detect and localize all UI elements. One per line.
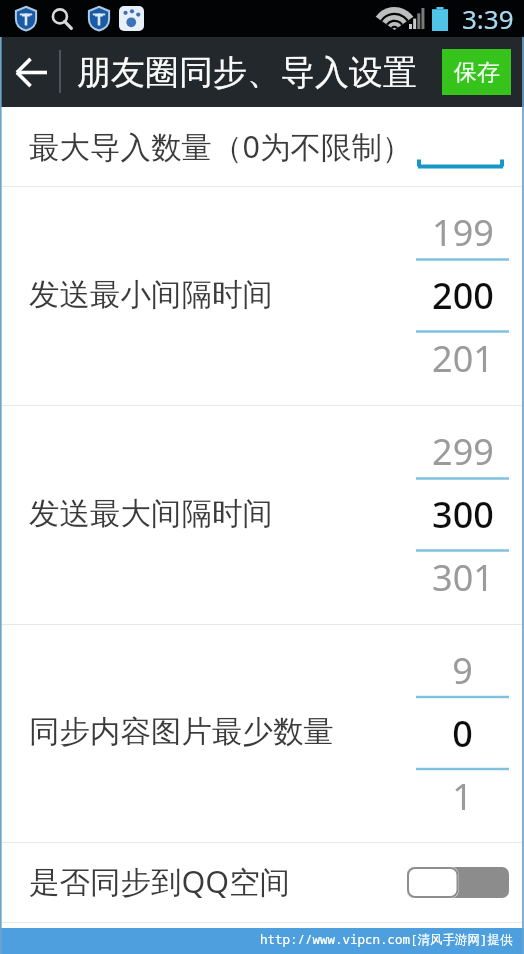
button[interactable]: 最大导入数量（0为不限制） — [0, 107, 524, 186]
button[interactable]: Back — [0, 37, 59, 107]
staticText: 201 — [432, 334, 494, 383]
button[interactable]: Max import count input — [417, 143, 504, 169]
staticText: http://www.vipcn.com[清风手游网]提供 — [260, 931, 513, 948]
button[interactable]: 保存 — [442, 49, 511, 95]
button[interactable]: 发送最大间隔时间 — [0, 405, 524, 624]
staticText: 299 — [432, 427, 494, 476]
staticText: 发送最小间隔时间 — [29, 276, 273, 314]
staticText: 发送最大间隔时间 — [29, 495, 273, 533]
staticText: 保存 — [454, 58, 500, 87]
staticText: 1 — [452, 772, 473, 821]
staticText: 同步内容图片最少数量 — [29, 713, 334, 751]
staticText: 300 — [432, 490, 494, 539]
staticText: 9 — [452, 646, 473, 695]
staticText: 301 — [432, 553, 494, 602]
staticText: 200 — [432, 271, 494, 320]
staticText: 3:39 — [462, 1, 514, 36]
button[interactable]: Number picker — [416, 624, 509, 842]
staticText: 是否同步到QQ空间 — [29, 860, 291, 902]
staticText: 199 — [432, 208, 494, 257]
button[interactable]: Toggle sync to QQ Zone — [407, 867, 509, 898]
button[interactable]: 发送最小间隔时间 — [0, 186, 524, 405]
button[interactable]: 同步内容图片最少数量 — [0, 624, 524, 842]
staticText: 最大导入数量（0为不限制） — [29, 125, 413, 167]
staticText: 0 — [452, 709, 473, 758]
button[interactable]: Number picker — [416, 186, 509, 405]
staticText: 朋友圈同步、导入设置 — [77, 51, 417, 94]
button[interactable]: 是否同步到QQ空间 — [0, 842, 524, 922]
button[interactable]: Number picker — [416, 405, 509, 624]
